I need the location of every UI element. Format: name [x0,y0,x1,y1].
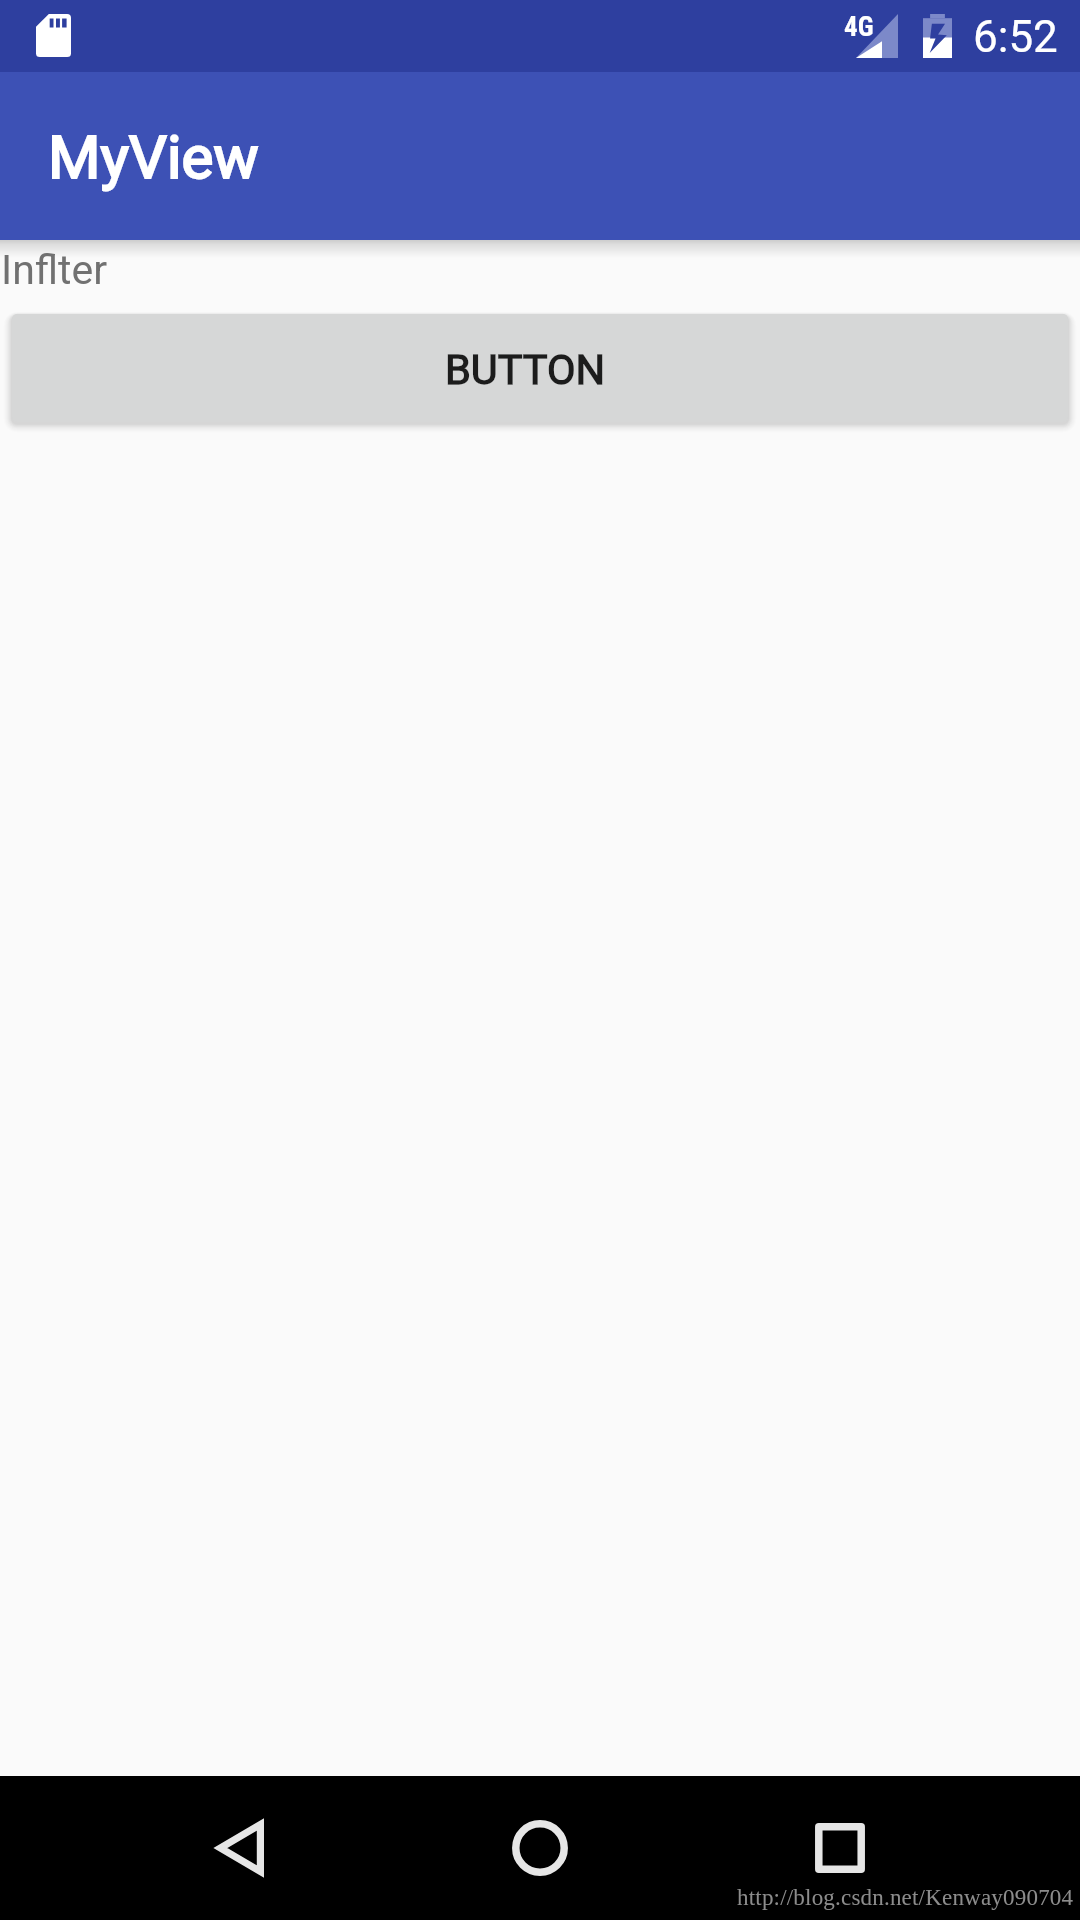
button[interactable]: Back [168,1776,312,1920]
staticText: MyView [48,122,259,192]
staticText: 6:52 [973,11,1058,63]
button[interactable]: Recent apps [768,1776,912,1920]
button[interactable]: Home [468,1776,612,1920]
staticText: 4G [844,11,874,43]
staticText: Inflter [1,246,108,294]
button[interactable]: BUTTON [12,314,1068,422]
staticText: http://blog.csdn.net/Kenway090704 [737,1885,1074,1910]
staticText: BUTTON [445,345,606,394]
